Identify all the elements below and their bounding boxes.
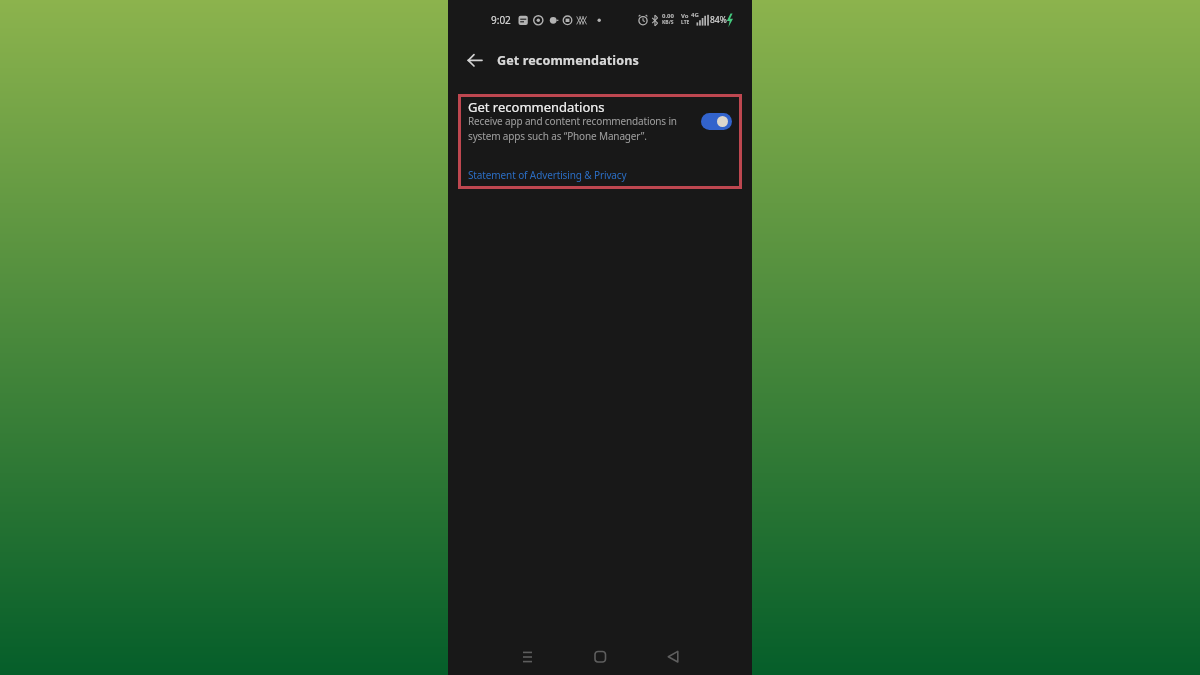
button[interactable] (515, 645, 540, 670)
button[interactable]: Statement of Advertising & Privacy (468, 168, 627, 182)
staticText: LTE (681, 19, 690, 26)
staticText: 9:02 (491, 13, 511, 27)
staticText: Get recommendations (468, 98, 605, 116)
button[interactable] (588, 645, 613, 670)
staticText: KB/S (662, 19, 674, 26)
button[interactable] (701, 113, 732, 130)
button[interactable] (462, 53, 488, 68)
button[interactable] (661, 645, 686, 670)
staticText: Vo (681, 12, 689, 20)
staticText: Receive app and content recommendations … (468, 114, 677, 143)
staticText: 4G (691, 11, 699, 19)
staticText: 84% (710, 14, 727, 26)
button[interactable]: Get recommendations (458, 94, 742, 189)
staticText: 0.00 (662, 12, 674, 20)
staticText: Get recommendations (497, 52, 639, 69)
